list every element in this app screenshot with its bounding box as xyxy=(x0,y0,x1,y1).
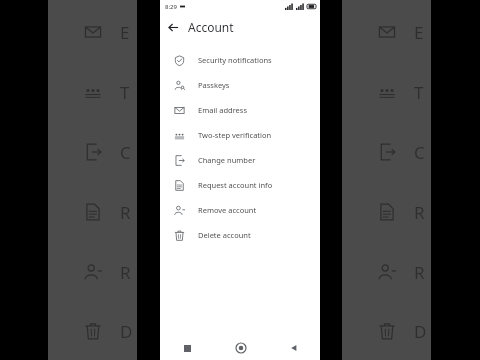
staticText: De xyxy=(414,320,431,343)
staticText: Re xyxy=(414,261,431,284)
button[interactable]: Home xyxy=(214,336,267,360)
button[interactable]: Recents xyxy=(160,336,214,360)
button[interactable]: Delete account xyxy=(160,222,320,247)
staticText: Tw xyxy=(414,81,431,104)
button[interactable]: Request account info xyxy=(160,172,320,197)
staticText: Email address xyxy=(198,105,248,115)
staticText: Two-step verification xyxy=(198,130,272,140)
staticText: Re xyxy=(414,201,431,224)
staticText: Delete account xyxy=(198,230,251,240)
staticText: Re xyxy=(120,201,137,224)
staticText: De xyxy=(120,320,137,343)
staticText: Security notifications xyxy=(198,55,272,65)
staticText: Tw xyxy=(120,81,137,104)
staticText: Ch xyxy=(120,141,137,164)
staticText: Remove account xyxy=(198,205,257,215)
button[interactable]: Remove account xyxy=(160,197,320,222)
staticText: Passkeys xyxy=(198,80,230,90)
button[interactable]: Email address xyxy=(160,97,320,122)
button[interactable]: Change number xyxy=(160,147,320,172)
staticText: Re xyxy=(120,261,137,284)
button[interactable]: Navigate up xyxy=(160,14,186,40)
button[interactable]: Two-step verification xyxy=(160,122,320,147)
staticText: 8:29 xyxy=(165,3,177,11)
staticText: Account xyxy=(188,19,234,35)
staticText: En xyxy=(414,21,431,44)
button[interactable]: Passkeys xyxy=(160,72,320,97)
staticText: Request account info xyxy=(198,180,273,190)
button[interactable]: Security notifications xyxy=(160,47,320,72)
button[interactable]: Back xyxy=(267,336,320,360)
staticText: Ch xyxy=(414,141,431,164)
staticText: Change number xyxy=(198,155,256,165)
staticText: En xyxy=(120,21,137,44)
